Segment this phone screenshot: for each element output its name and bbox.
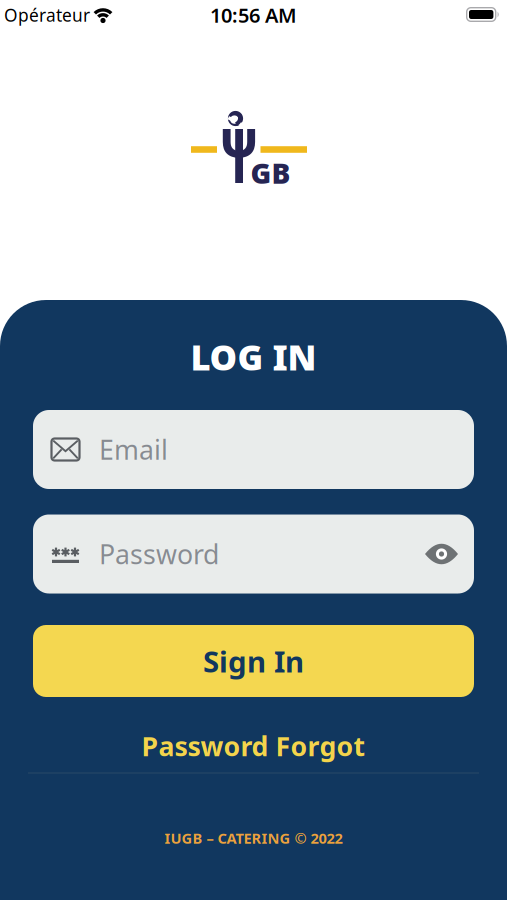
staticText: IUGB – CATERING © 2022 [164, 828, 342, 848]
staticText: Email [99, 432, 168, 467]
button[interactable]: Password [33, 514, 474, 593]
staticText: Sign In [203, 641, 304, 680]
staticText: Password Forgot [141, 728, 365, 764]
staticText: LOG IN [190, 334, 316, 380]
staticText: Password [99, 536, 219, 572]
staticText: 10:56 AM [210, 2, 297, 28]
staticText: Opérateur [4, 3, 90, 26]
button[interactable]: Email [33, 410, 474, 489]
button[interactable]: Sign In [33, 625, 474, 697]
button[interactable]: Password Forgot [141, 728, 365, 764]
staticText: GB [250, 154, 290, 192]
